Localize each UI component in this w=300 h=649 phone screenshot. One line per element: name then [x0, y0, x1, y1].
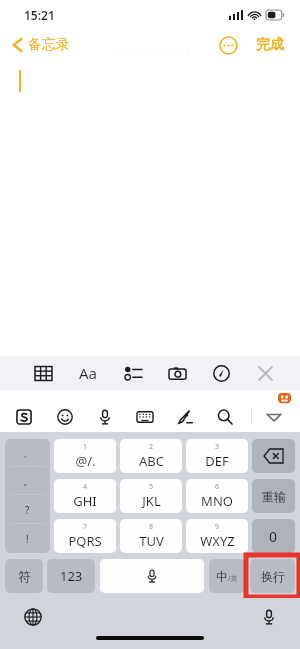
- button[interactable]: Sogou mascot: [277, 390, 292, 405]
- button[interactable]: Format text: [71, 356, 105, 390]
- staticText: TUV: [139, 532, 164, 550]
- staticText: 重输: [262, 489, 286, 504]
- staticText: !: [26, 532, 29, 546]
- button[interactable]: Markup: [204, 356, 238, 390]
- button[interactable]: Table: [26, 356, 60, 390]
- staticText: WXYZ: [200, 532, 235, 550]
- staticText: 4: [83, 482, 88, 492]
- button[interactable]: Checklist: [116, 356, 150, 390]
- button[interactable]: 0: [252, 519, 295, 553]
- staticText: MNO: [201, 492, 233, 510]
- button[interactable]: 4: [54, 479, 116, 513]
- button[interactable]: 符: [5, 559, 43, 593]
- staticText: 、: [23, 447, 33, 460]
- staticText: 123: [60, 567, 83, 585]
- button[interactable]: Sogou input: [10, 403, 38, 431]
- staticText: 。: [23, 475, 33, 488]
- staticText: 完成: [256, 36, 284, 54]
- staticText: 符: [18, 568, 31, 584]
- button[interactable]: 、: [5, 439, 50, 467]
- button[interactable]: 1: [54, 439, 116, 473]
- button[interactable]: Space: [100, 559, 204, 593]
- button[interactable]: Search: [211, 403, 239, 431]
- staticText: JKL: [142, 492, 161, 510]
- button[interactable]: ?: [5, 495, 50, 524]
- button[interactable]: Keyboard layout: [131, 403, 159, 431]
- button[interactable]: 中: [209, 559, 245, 593]
- staticText: 换行: [261, 569, 285, 584]
- button[interactable]: 7: [54, 519, 116, 553]
- staticText: 3: [215, 442, 220, 452]
- staticText: 2: [149, 442, 154, 452]
- staticText: PQRS: [68, 532, 102, 550]
- button[interactable]: 完成: [252, 32, 288, 58]
- button[interactable]: 换行: [250, 559, 295, 593]
- button[interactable]: 备忘录: [8, 32, 74, 58]
- staticText: 0: [269, 527, 278, 546]
- button[interactable]: 2: [120, 439, 182, 473]
- button[interactable]: !: [5, 524, 50, 553]
- button[interactable]: 8: [120, 519, 182, 553]
- staticText: 5: [149, 482, 154, 492]
- staticText: Aa: [79, 363, 98, 383]
- staticText: 7: [83, 522, 88, 532]
- button[interactable]: 重输: [252, 479, 295, 513]
- staticText: 6: [215, 482, 220, 492]
- button[interactable]: Close keyboard: [248, 356, 282, 390]
- button[interactable]: Handwriting: [171, 403, 199, 431]
- button[interactable]: 3: [186, 439, 248, 473]
- button[interactable]: More options: [216, 33, 240, 57]
- button[interactable]: Voice input: [256, 604, 282, 630]
- staticText: DEF: [205, 452, 229, 470]
- staticText: 中: [216, 569, 228, 584]
- staticText: GHI: [73, 492, 97, 510]
- button[interactable]: Switch language: [20, 604, 46, 630]
- staticText: ?: [25, 503, 30, 517]
- button[interactable]: 6: [186, 479, 248, 513]
- staticText: 1: [83, 442, 88, 452]
- button[interactable]: 123: [47, 559, 95, 593]
- button[interactable]: 5: [120, 479, 182, 513]
- staticText: 8: [149, 522, 154, 532]
- staticText: 15:21: [24, 7, 55, 23]
- button[interactable]: 。: [5, 467, 50, 495]
- button[interactable]: 9: [186, 519, 248, 553]
- staticText: /英: [228, 574, 238, 584]
- button[interactable]: Emoji: [51, 403, 79, 431]
- staticText: ABC: [139, 452, 164, 470]
- staticText: @/.: [75, 452, 96, 470]
- button[interactable]: Camera: [160, 356, 194, 390]
- button[interactable]: Delete: [252, 439, 295, 473]
- staticText: 9: [215, 522, 220, 532]
- button[interactable]: Voice input: [91, 403, 119, 431]
- staticText: 备忘录: [28, 36, 70, 54]
- button[interactable]: Hide keyboard: [260, 403, 288, 431]
